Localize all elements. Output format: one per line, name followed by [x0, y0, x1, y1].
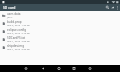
staticText: Mar 1, 2015 4.08 kB — [7, 39, 30, 42]
button[interactable]: Recents — [71, 65, 77, 72]
staticText: build.prop — [7, 20, 22, 24]
staticText: user-data — [7, 12, 21, 16]
staticText: eclipse.config — [7, 28, 27, 32]
button[interactable]: Back — [40, 65, 46, 72]
staticText: SDCardFS.txt — [7, 36, 26, 40]
button[interactable]: Sort — [110, 4, 115, 11]
button[interactable]: eclipse.config — [0, 27, 120, 35]
staticText: SD card — [3, 5, 16, 10]
button[interactable]: Home — [56, 65, 62, 72]
button[interactable]: SDCardFS.txt — [0, 35, 120, 43]
button[interactable]: More options — [115, 4, 120, 11]
button[interactable]: Screenshot — [87, 65, 93, 72]
button[interactable]: build.prop — [0, 19, 120, 27]
button[interactable]: Menu — [23, 65, 29, 72]
staticText: Mar 1, 2015 9.20 kB — [7, 47, 30, 50]
staticText: shipdev.img — [7, 44, 25, 48]
staticText: Mar 2, 2015 1.32 kB — [7, 23, 30, 26]
staticText: Jan 7 — [7, 15, 13, 18]
button[interactable]: shipdev.img — [0, 43, 120, 51]
button[interactable]: Search — [105, 4, 110, 11]
staticText: Mar 2, 2015 2.10 kB — [7, 31, 30, 34]
button[interactable]: user-data — [0, 11, 120, 19]
